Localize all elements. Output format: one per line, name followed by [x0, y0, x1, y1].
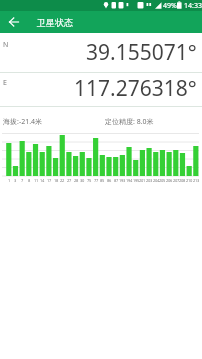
staticText: 海拔:-21.4米 — [3, 117, 43, 127]
staticText: E — [3, 78, 7, 88]
staticText: 定位精度: 8.0米 — [105, 117, 154, 127]
staticText: 卫星状态 — [37, 17, 73, 28]
button[interactable] — [4, 12, 24, 32]
staticText: N — [3, 40, 9, 50]
staticText: 14:33 — [184, 1, 202, 11]
staticText: 39.155071° — [86, 38, 197, 67]
staticText: 117.276318° — [74, 74, 197, 103]
staticText: 49% — [163, 1, 177, 11]
